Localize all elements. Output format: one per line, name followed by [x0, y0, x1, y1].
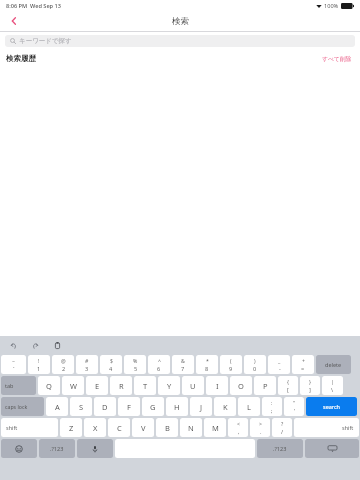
button[interactable]: _: [268, 355, 290, 374]
button[interactable]: M: [204, 418, 226, 437]
staticText: A: [55, 402, 60, 412]
staticText: 2: [62, 365, 66, 373]
button[interactable]: @: [52, 355, 74, 374]
button[interactable]: U: [182, 376, 204, 395]
staticText: 6: [157, 365, 161, 373]
staticText: \: [331, 386, 334, 394]
staticText: T: [143, 381, 148, 391]
staticText: G: [150, 402, 156, 412]
button[interactable]: Z: [60, 418, 82, 437]
staticText: &: [181, 357, 185, 364]
staticText: *: [206, 357, 209, 364]
button[interactable]: C: [108, 418, 130, 437]
button[interactable]: キーワードで探す: [5, 35, 355, 47]
button[interactable]: %: [124, 355, 146, 374]
button[interactable]: *: [196, 355, 218, 374]
button[interactable]: Redo: [28, 338, 42, 352]
button[interactable]: B: [156, 418, 178, 437]
staticText: すべて削除: [322, 55, 352, 62]
button[interactable]: P: [254, 376, 276, 395]
staticText: search: [323, 403, 341, 410]
staticText: O: [238, 381, 244, 391]
button[interactable]: :: [262, 397, 282, 416]
button[interactable]: S: [70, 397, 92, 416]
button[interactable]: I: [206, 376, 228, 395]
button[interactable]: Q: [38, 376, 60, 395]
button[interactable]: .?123: [39, 439, 75, 458]
staticText: V: [141, 423, 146, 433]
button[interactable]: <: [228, 418, 248, 437]
staticText: ): [254, 357, 256, 364]
button[interactable]: G: [142, 397, 164, 416]
button[interactable]: Y: [158, 376, 180, 395]
button[interactable]: Dictation: [77, 439, 113, 458]
staticText: $: [110, 357, 113, 364]
button[interactable]: Emoji: [1, 439, 37, 458]
button[interactable]: W: [62, 376, 84, 395]
button[interactable]: |: [322, 376, 343, 395]
button[interactable]: R: [110, 376, 132, 395]
staticText: J: [200, 402, 203, 412]
staticText: `: [13, 365, 15, 373]
button[interactable]: {: [278, 376, 298, 395]
button[interactable]: Back: [4, 11, 24, 31]
staticText: |: [331, 378, 334, 385]
staticText: 8: [205, 365, 209, 373]
button[interactable]: N: [180, 418, 202, 437]
button[interactable]: H: [166, 397, 188, 416]
button[interactable]: すべて削除: [320, 53, 354, 64]
staticText: 5: [134, 365, 138, 373]
button[interactable]: delete: [316, 355, 351, 374]
button[interactable]: tab: [1, 376, 36, 395]
button[interactable]: A: [46, 397, 68, 416]
staticText: I: [216, 381, 219, 391]
button[interactable]: ": [284, 397, 304, 416]
button[interactable]: D: [94, 397, 116, 416]
button[interactable]: K: [214, 397, 236, 416]
staticText: ;: [271, 407, 273, 415]
staticText: .?123: [50, 445, 64, 452]
staticText: F: [127, 402, 131, 412]
button[interactable]: (: [220, 355, 242, 374]
button[interactable]: Undo: [6, 338, 20, 352]
staticText: S: [79, 402, 84, 412]
staticText: ': [294, 407, 296, 415]
button[interactable]: F: [118, 397, 140, 416]
button[interactable]: shift: [294, 418, 359, 437]
button[interactable]: J: [190, 397, 212, 416]
button[interactable]: &: [172, 355, 194, 374]
button[interactable]: L: [238, 397, 260, 416]
button[interactable]: ?: [272, 418, 292, 437]
button[interactable]: ~: [1, 355, 26, 374]
staticText: [: [287, 386, 289, 394]
button[interactable]: X: [84, 418, 106, 437]
staticText: -: [279, 365, 281, 373]
button[interactable]: shift: [1, 418, 58, 437]
button[interactable]: #: [76, 355, 98, 374]
staticText: <: [237, 420, 240, 427]
button[interactable]: search: [306, 397, 357, 416]
staticText: 100%: [324, 2, 339, 10]
button[interactable]: +: [292, 355, 314, 374]
button[interactable]: Hide keyboard: [305, 439, 359, 458]
button[interactable]: !: [28, 355, 50, 374]
button[interactable]: E: [86, 376, 108, 395]
button[interactable]: ): [244, 355, 266, 374]
button[interactable]: .?123: [257, 439, 303, 458]
staticText: 1: [37, 365, 41, 373]
button[interactable]: $: [100, 355, 122, 374]
button[interactable]: }: [300, 376, 320, 395]
button[interactable]: V: [132, 418, 154, 437]
button[interactable]: T: [134, 376, 156, 395]
button[interactable]: caps lock: [1, 397, 44, 416]
button[interactable]: Paste: [50, 338, 64, 352]
button[interactable]: O: [230, 376, 252, 395]
button[interactable]: >: [250, 418, 270, 437]
staticText: R: [119, 381, 124, 391]
staticText: 8:06 PM Wed Sep 13: [6, 2, 61, 10]
button[interactable]: ^: [148, 355, 170, 374]
staticText: X: [93, 423, 98, 433]
staticText: #: [85, 357, 89, 364]
staticText: .?123: [273, 445, 287, 452]
